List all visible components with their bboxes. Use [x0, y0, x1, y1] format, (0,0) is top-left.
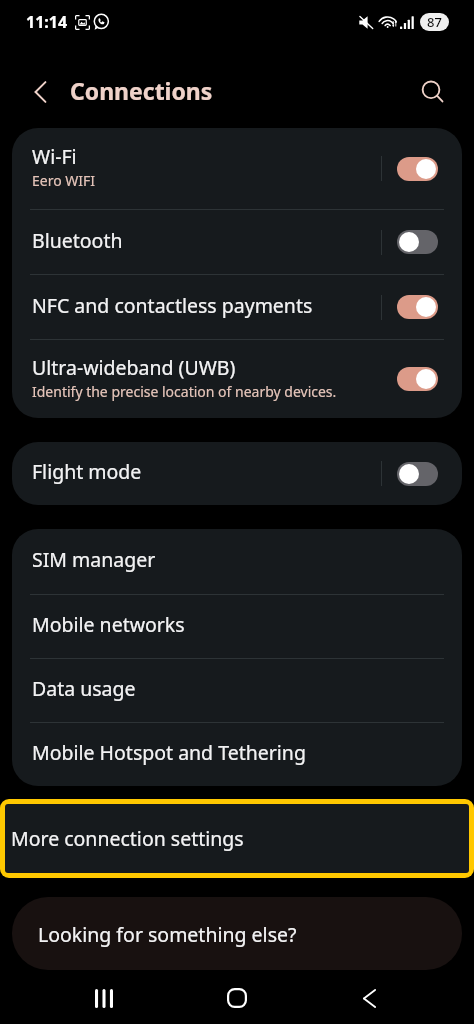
staticText: Data usage — [32, 675, 136, 702]
button[interactable]: Flight mode — [12, 442, 462, 505]
staticText: Ultra-wideband (UWB) — [32, 354, 236, 381]
staticText: SIM manager — [32, 546, 156, 573]
staticText: Bluetooth — [32, 227, 123, 254]
staticText: Mobile networks — [32, 611, 185, 638]
button[interactable]: Off — [397, 230, 438, 254]
button[interactable]: Home — [199, 971, 274, 1024]
button[interactable]: Back — [332, 971, 407, 1024]
button[interactable]: Data usage — [12, 659, 462, 722]
button[interactable]: Off — [397, 462, 438, 486]
button[interactable]: Looking for something else? — [12, 897, 462, 970]
staticText: Connections — [70, 75, 213, 106]
staticText: More connection settings — [11, 825, 244, 852]
button[interactable]: Ultra-wideband (UWB) — [12, 340, 462, 418]
button[interactable]: Search — [409, 68, 457, 116]
button[interactable]: Mobile Hotspot and Tethering — [12, 723, 462, 786]
button[interactable]: More connection settings — [5, 804, 469, 873]
button[interactable]: Navigate up — [12, 68, 68, 116]
button[interactable]: Bluetooth — [12, 210, 462, 274]
staticText: 11:14 — [26, 11, 68, 33]
staticText: Identify the precise location of nearby … — [32, 382, 337, 401]
button[interactable]: On — [397, 295, 438, 319]
staticText: Wi-Fi — [32, 143, 77, 170]
staticText: Looking for something else? — [38, 921, 297, 948]
button[interactable]: Recent apps — [66, 971, 141, 1024]
button[interactable]: Wi-Fi — [12, 128, 462, 209]
staticText: 87 — [427, 13, 442, 31]
staticText: Eero WIFI — [32, 171, 96, 190]
button[interactable]: SIM manager — [12, 529, 462, 594]
button[interactable]: On — [397, 367, 438, 391]
staticText: Flight mode — [32, 458, 142, 485]
button[interactable]: On — [397, 157, 438, 181]
button[interactable]: Mobile networks — [12, 595, 462, 658]
button[interactable]: NFC and contactless payments — [12, 275, 462, 339]
staticText: Mobile Hotspot and Tethering — [32, 739, 306, 766]
staticText: NFC and contactless payments — [32, 292, 313, 319]
